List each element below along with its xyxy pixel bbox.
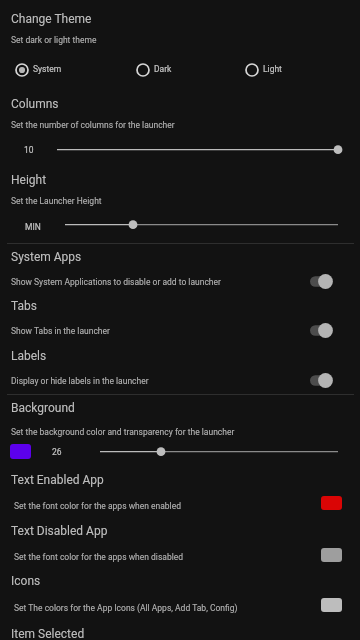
staticText: MIN <box>25 222 41 232</box>
staticText: Icons <box>11 574 41 588</box>
staticText: Labels <box>11 349 47 363</box>
button[interactable]: Icons color <box>321 598 342 612</box>
staticText: 10 <box>24 145 34 155</box>
staticText: Set dark or light theme <box>11 35 97 45</box>
button[interactable]: Text enabled color <box>321 496 342 510</box>
button[interactable]: Slider <box>57 140 338 160</box>
button[interactable]: Background color <box>10 444 31 459</box>
staticText: Set The colors for the App Icons (All Ap… <box>14 603 238 613</box>
button[interactable]: Text disabled color <box>321 548 342 562</box>
staticText: System Apps <box>11 250 82 264</box>
button[interactable]: Slider <box>100 442 338 462</box>
staticText: Background <box>11 401 75 415</box>
staticText: Light <box>263 64 282 74</box>
staticText: Display or hide labels in the launcher <box>11 376 149 386</box>
button[interactable]: Toggle <box>308 319 344 341</box>
button[interactable]: Toggle <box>308 270 344 292</box>
staticText: Set the font color for the apps when dis… <box>14 552 184 562</box>
staticText: Set the font color for the apps when ena… <box>14 501 181 511</box>
staticText: Set the number of columns for the launch… <box>11 120 175 130</box>
button[interactable]: Dark <box>132 58 194 82</box>
staticText: Columns <box>11 97 59 111</box>
staticText: Item Selected <box>11 627 85 640</box>
staticText: Text Disabled App <box>11 524 108 538</box>
staticText: Show System Applications to disable or a… <box>11 277 221 287</box>
staticText: Dark <box>154 64 172 74</box>
staticText: Tabs <box>11 299 37 313</box>
button[interactable]: System <box>11 58 87 82</box>
staticText: 26 <box>52 447 62 457</box>
staticText: Set the Launcher Height <box>11 196 102 206</box>
staticText: Text Enabled App <box>11 473 104 487</box>
staticText: Show Tabs in the launcher <box>11 326 110 336</box>
staticText: System <box>33 64 62 74</box>
staticText: Change Theme <box>11 12 92 26</box>
staticText: Set the background color and transparenc… <box>11 427 235 437</box>
button[interactable]: Slider <box>65 215 338 235</box>
button[interactable]: Light <box>241 58 310 82</box>
staticText: Height <box>11 173 47 187</box>
button[interactable]: Toggle <box>308 369 344 391</box>
